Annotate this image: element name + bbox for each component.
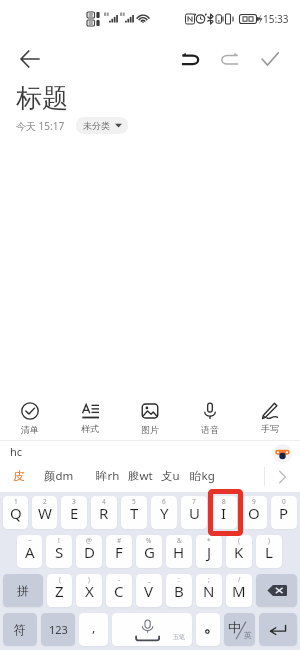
button[interactable]: 颜dm xyxy=(44,466,74,492)
staticText: 3 xyxy=(72,497,76,506)
button[interactable]: U xyxy=(181,496,207,529)
staticText: 眙kg xyxy=(190,468,215,484)
button[interactable]: Comma xyxy=(79,613,108,646)
button[interactable]: 未分类 xyxy=(76,117,128,134)
button[interactable]: B xyxy=(166,574,192,607)
staticText: 7 xyxy=(192,497,196,506)
button[interactable]: P xyxy=(271,496,297,529)
button[interactable]: G xyxy=(136,535,162,568)
staticText: C xyxy=(114,581,124,601)
button[interactable]: L xyxy=(256,535,282,568)
button[interactable]: Z xyxy=(47,574,72,607)
staticText: % xyxy=(146,536,152,545)
staticText: 手写 xyxy=(261,423,279,434)
button[interactable]: O xyxy=(241,496,267,529)
button[interactable]: E xyxy=(61,496,87,529)
staticText: 图片 xyxy=(141,424,159,435)
button[interactable]: 样式 xyxy=(60,392,120,440)
button[interactable]: N xyxy=(196,574,222,607)
staticText: Q xyxy=(10,503,22,523)
button[interactable]: Backspace xyxy=(256,574,297,607)
staticText: 4 xyxy=(102,497,106,506)
button[interactable]: More candidates xyxy=(265,466,300,492)
staticText: 拼 xyxy=(17,583,29,598)
staticText: 未分类 xyxy=(83,120,110,131)
button[interactable]: T xyxy=(121,496,147,529)
staticText: & xyxy=(177,536,182,545)
button[interactable]: Undo xyxy=(172,41,208,77)
button[interactable]: A xyxy=(17,535,42,568)
staticText: ! xyxy=(58,536,60,545)
button[interactable]: 123 xyxy=(41,613,75,646)
staticText: ~ xyxy=(28,536,32,545)
button[interactable]: I xyxy=(211,496,237,529)
button[interactable]: X xyxy=(76,574,102,607)
staticText: _ xyxy=(148,575,151,584)
button[interactable]: V xyxy=(136,574,162,607)
button[interactable]: C xyxy=(106,574,132,607)
staticText: B xyxy=(174,581,184,601)
staticText: 眸rh xyxy=(96,468,120,484)
button[interactable]: M xyxy=(226,574,252,607)
staticText: 样式 xyxy=(81,423,99,434)
staticText: 9 xyxy=(252,497,256,506)
staticText: K xyxy=(234,542,244,562)
button[interactable]: Space / voice input xyxy=(112,613,192,646)
staticText: Z xyxy=(55,581,64,601)
button[interactable]: 眸rh xyxy=(96,466,120,492)
staticText: 标题 xyxy=(16,82,68,115)
button[interactable]: J xyxy=(196,535,222,568)
button[interactable]: 图片 xyxy=(120,392,180,440)
staticText: : xyxy=(178,575,180,584)
staticText: 五笔 xyxy=(173,633,185,641)
button[interactable]: Y xyxy=(151,496,177,529)
staticText: ; xyxy=(208,575,210,584)
button[interactable]: 符 xyxy=(3,613,37,646)
staticText: 15:33 xyxy=(263,12,289,26)
button[interactable]: 皮 xyxy=(13,466,25,492)
button[interactable]: Full stop xyxy=(196,613,220,646)
button[interactable]: F xyxy=(106,535,132,568)
button[interactable]: Input method settings xyxy=(273,444,292,463)
staticText: M xyxy=(232,581,246,601)
staticText: ) xyxy=(268,536,270,545)
button[interactable]: 语音 xyxy=(180,392,240,440)
button[interactable]: Back xyxy=(12,41,48,77)
staticText: 中 xyxy=(228,619,241,635)
staticText: 符 xyxy=(14,622,26,637)
staticText: X xyxy=(85,581,94,601)
button[interactable]: 朘wt xyxy=(128,466,153,492)
staticText: 1 xyxy=(14,497,18,506)
button[interactable]: Q xyxy=(3,496,28,529)
button[interactable]: Enter xyxy=(259,613,297,646)
button[interactable]: 手写 xyxy=(240,392,300,440)
button[interactable]: H xyxy=(166,535,192,568)
button[interactable]: W xyxy=(32,496,57,529)
staticText: 6 xyxy=(162,497,166,506)
button[interactable]: 清单 xyxy=(0,392,60,440)
button[interactable]: D xyxy=(76,535,102,568)
staticText: D xyxy=(84,542,95,562)
staticText: 语音 xyxy=(201,424,219,435)
button[interactable]: K xyxy=(226,535,252,568)
staticText: 123 xyxy=(49,622,68,637)
staticText: @ xyxy=(86,536,92,545)
staticText: V xyxy=(144,581,154,601)
button[interactable]: Done xyxy=(252,41,288,77)
button[interactable]: 眙kg xyxy=(190,466,215,492)
staticText: 颜dm xyxy=(44,468,74,484)
staticText: S xyxy=(55,542,64,562)
button[interactable]: Redo xyxy=(212,41,248,77)
button[interactable]: R xyxy=(91,496,117,529)
button[interactable]: 拼 xyxy=(3,574,43,607)
staticText: 今天 15:17 xyxy=(16,119,65,133)
staticText: 英 xyxy=(244,630,252,640)
staticText: H xyxy=(173,542,185,562)
staticText: O xyxy=(248,503,260,523)
staticText: ) xyxy=(88,575,90,584)
staticText: U xyxy=(189,503,200,523)
button[interactable]: 攴u xyxy=(161,466,180,492)
button[interactable]: S xyxy=(46,535,72,568)
staticText: 清单 xyxy=(21,424,39,435)
button[interactable]: Chinese / English toggle xyxy=(224,613,255,646)
